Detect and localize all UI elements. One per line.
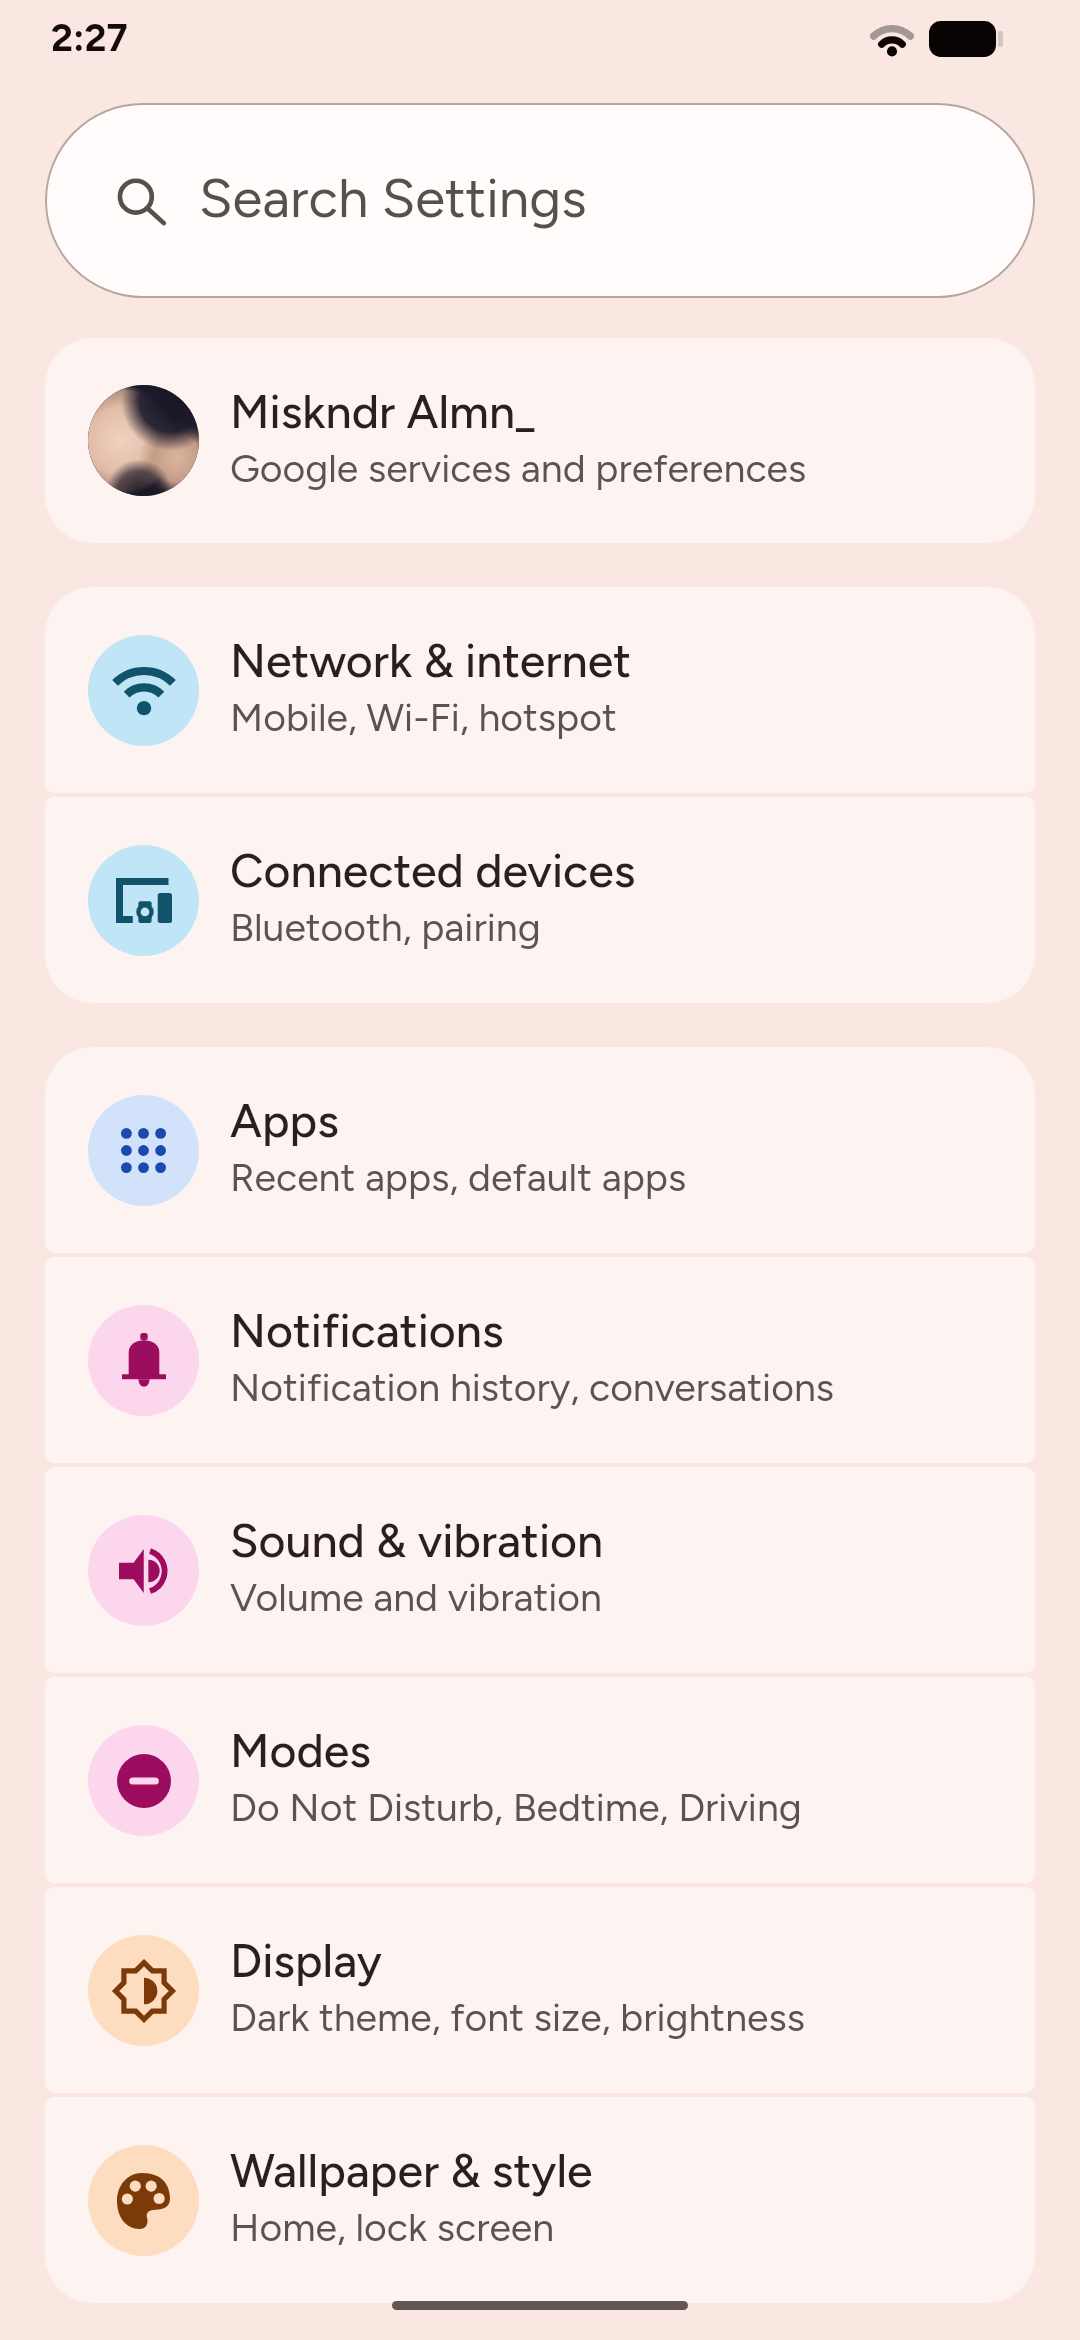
staticText: Do Not Disturb, Bedtime, Driving	[230, 1784, 802, 1831]
staticText: Google services and preferences	[230, 445, 807, 492]
button[interactable]: Miskndr Almn_	[45, 338, 1035, 543]
staticText: Miskndr Almn_	[230, 384, 536, 440]
button[interactable]: Display	[45, 1887, 1035, 2093]
staticText: Search Settings	[199, 165, 587, 230]
staticText: Wallpaper & style	[230, 2143, 593, 2199]
staticText: Sound & vibration	[230, 1513, 604, 1569]
staticText: Dark theme, font size, brightness	[230, 1994, 805, 2041]
button[interactable]: Notifications	[45, 1257, 1035, 1463]
button[interactable]: Wallpaper & style	[45, 2097, 1035, 2303]
staticText: Apps	[230, 1093, 339, 1149]
staticText: 2:27	[51, 15, 128, 61]
button[interactable]: Connected devices	[45, 797, 1035, 1003]
staticText: Bluetooth, pairing	[230, 904, 541, 951]
staticText: Display	[230, 1933, 382, 1989]
button[interactable]: Apps	[45, 1047, 1035, 1253]
button[interactable]: Modes	[45, 1677, 1035, 1883]
button[interactable]: Sound & vibration	[45, 1467, 1035, 1673]
button[interactable]: Search Settings	[45, 103, 1035, 298]
staticText: Notifications	[230, 1303, 504, 1359]
button[interactable]: Network & internet	[45, 587, 1035, 793]
staticText: Network & internet	[230, 633, 632, 689]
staticText: Mobile, Wi-Fi, hotspot	[230, 694, 617, 741]
staticText: Home, lock screen	[230, 2204, 555, 2251]
staticText: Recent apps, default apps	[230, 1154, 687, 1201]
staticText: Modes	[230, 1723, 371, 1779]
staticText: Volume and vibration	[230, 1574, 602, 1621]
staticText: Notification history, conversations	[230, 1364, 835, 1411]
staticText: Connected devices	[230, 843, 636, 899]
